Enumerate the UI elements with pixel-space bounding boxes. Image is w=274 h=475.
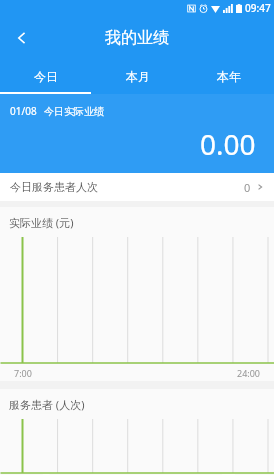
button[interactable]: Back [0, 16, 44, 60]
staticText: 实际业绩 (元) [9, 215, 74, 230]
staticText: 09:47 [245, 1, 271, 15]
staticText: 服务患者 (人次) [9, 397, 85, 412]
staticText: 7:00 [14, 367, 32, 379]
button[interactable]: 今日服务患者人次 [0, 173, 274, 201]
staticText: 今日服务患者人次 [10, 180, 98, 194]
staticText: 01/08 [10, 104, 37, 118]
button[interactable]: 本年 [183, 60, 274, 92]
button[interactable]: 本月 [92, 60, 183, 92]
staticText: 本年 [217, 69, 241, 84]
staticText: 我的业绩 [105, 28, 169, 48]
button[interactable]: 今日 [0, 60, 92, 92]
staticText: 今日 [34, 69, 58, 84]
staticText: 0.00 [200, 125, 256, 163]
staticText: 本月 [126, 69, 150, 84]
staticText: 0 [244, 180, 251, 195]
staticText: 今日实际业绩 [44, 105, 104, 118]
staticText: 24:00 [237, 367, 261, 379]
